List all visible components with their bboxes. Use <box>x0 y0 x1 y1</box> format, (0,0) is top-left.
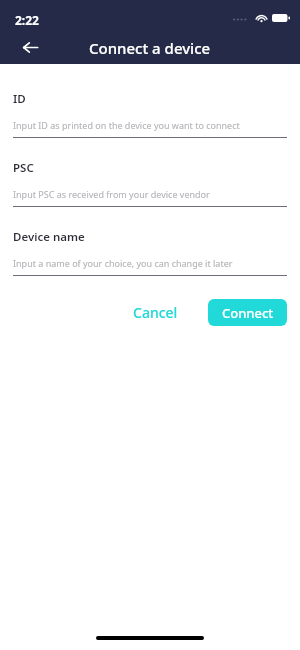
button[interactable]: ID <box>0 91 300 138</box>
staticText: Connect a device <box>89 38 211 58</box>
button[interactable]: Back <box>13 30 47 64</box>
staticText: 2:22 <box>15 12 39 28</box>
staticText: PSC <box>13 160 34 176</box>
button[interactable]: Connect <box>208 299 287 326</box>
staticText: Connect <box>222 304 274 322</box>
button[interactable]: PSC <box>0 160 300 207</box>
button[interactable]: Cancel <box>121 297 190 328</box>
button[interactable]: Device name <box>0 229 300 276</box>
staticText: Input a name of your choice, you can cha… <box>13 257 233 269</box>
staticText: Device name <box>13 229 85 245</box>
staticText: Cancel <box>133 303 178 322</box>
staticText: Input ID as printed on the device you wa… <box>13 119 240 131</box>
staticText: ID <box>13 91 26 107</box>
staticText: Input PSC as received from your device v… <box>13 188 210 200</box>
